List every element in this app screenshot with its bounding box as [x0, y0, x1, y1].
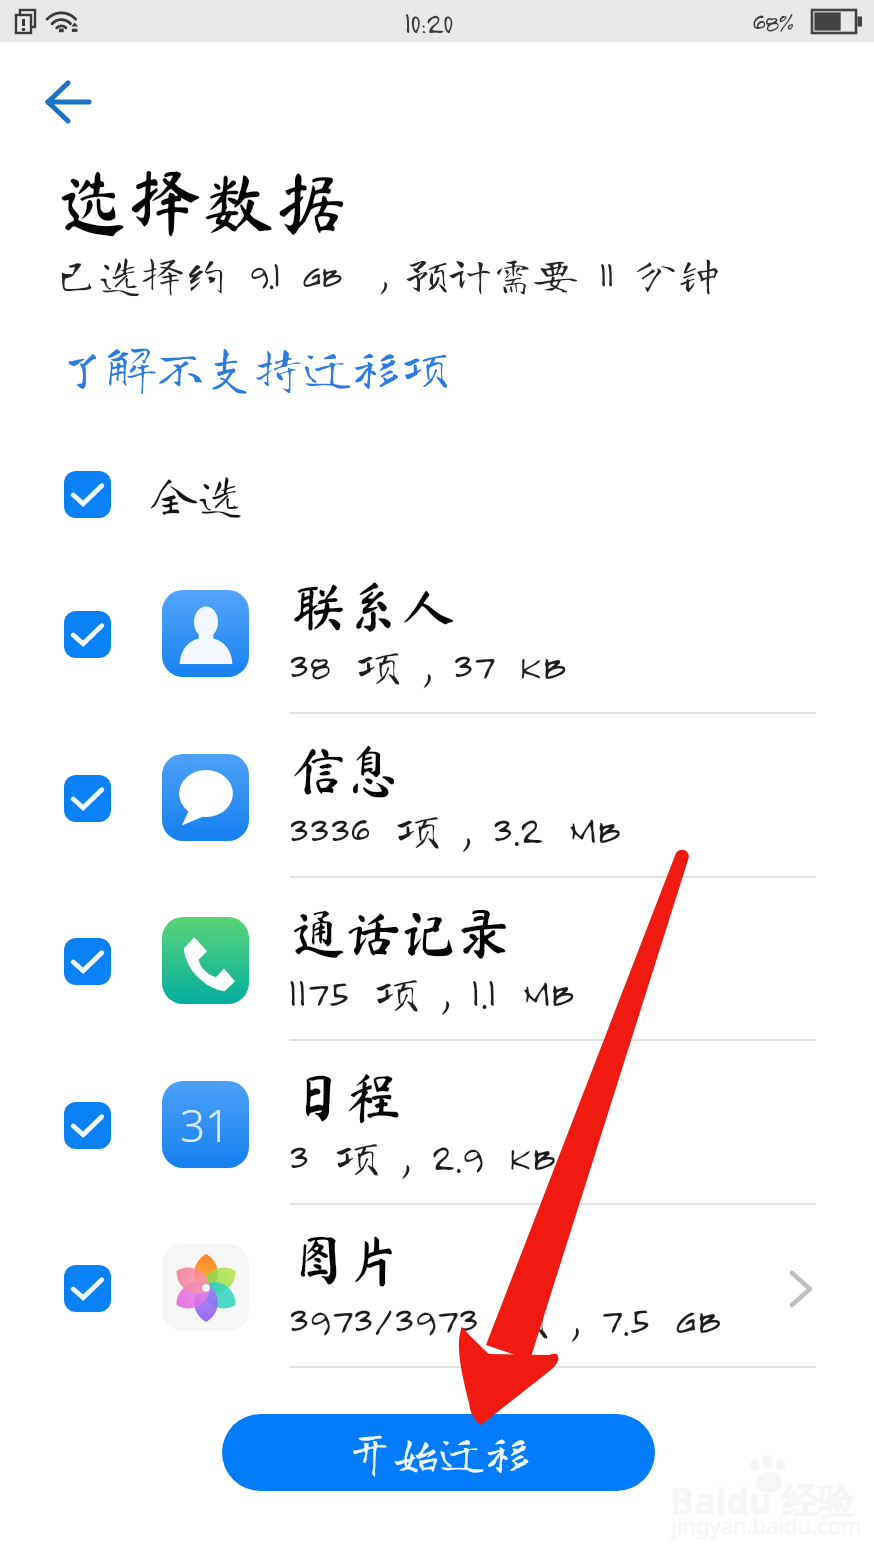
- staticText: 开始迁移: [347, 1430, 531, 1476]
- staticText: 联系人: [291, 579, 457, 634]
- staticText: 3973/3973 项，7.5 GB: [288, 1296, 721, 1343]
- button[interactable]: 日程 selected: [0, 1043, 874, 1207]
- staticText: 日程: [291, 1070, 402, 1125]
- staticText: 1175 项，1.1 MB: [288, 969, 575, 1016]
- staticText: 3336 项，3.2 MB: [288, 806, 621, 853]
- staticText: 已选择约 9.1 GB ，预计需要 11 分钟: [55, 252, 721, 295]
- button[interactable]: 图片 selected: [64, 1265, 111, 1312]
- staticText: 31: [180, 1095, 231, 1155]
- button[interactable]: 图片 selected: [0, 1206, 874, 1370]
- staticText: 全选: [151, 471, 243, 517]
- button[interactable]: 开始迁移: [222, 1414, 655, 1491]
- staticText: Baidu 经验: [670, 1476, 854, 1525]
- button[interactable]: 通话记录 selected: [0, 879, 874, 1043]
- staticText: jingyan.baidu.com: [671, 1510, 862, 1540]
- button[interactable]: 信息 selected: [64, 775, 111, 822]
- button[interactable]: 日程 selected: [64, 1102, 111, 1149]
- button[interactable]: 了解不支持迁移项: [58, 343, 451, 392]
- staticText: 3 项，2.9 KB: [288, 1133, 556, 1180]
- button[interactable]: 信息 selected: [0, 716, 874, 880]
- button[interactable]: Open 图片 details: [770, 1254, 832, 1324]
- staticText: 信息: [291, 743, 402, 798]
- staticText: 38 项，37 KB: [288, 642, 567, 689]
- staticText: 10:20: [404, 4, 452, 40]
- staticText: 选择数据: [56, 166, 348, 239]
- button[interactable]: Select all, checked: [0, 456, 874, 532]
- button[interactable]: 联系人 selected: [0, 552, 874, 716]
- staticText: 通话记录: [291, 906, 512, 961]
- button[interactable]: 通话记录 selected: [64, 938, 111, 985]
- staticText: 图片: [291, 1233, 402, 1288]
- staticText: 68%: [752, 6, 793, 38]
- button[interactable]: Select all, checked: [64, 471, 111, 518]
- button[interactable]: Back: [22, 68, 114, 136]
- button[interactable]: 联系人 selected: [64, 611, 111, 658]
